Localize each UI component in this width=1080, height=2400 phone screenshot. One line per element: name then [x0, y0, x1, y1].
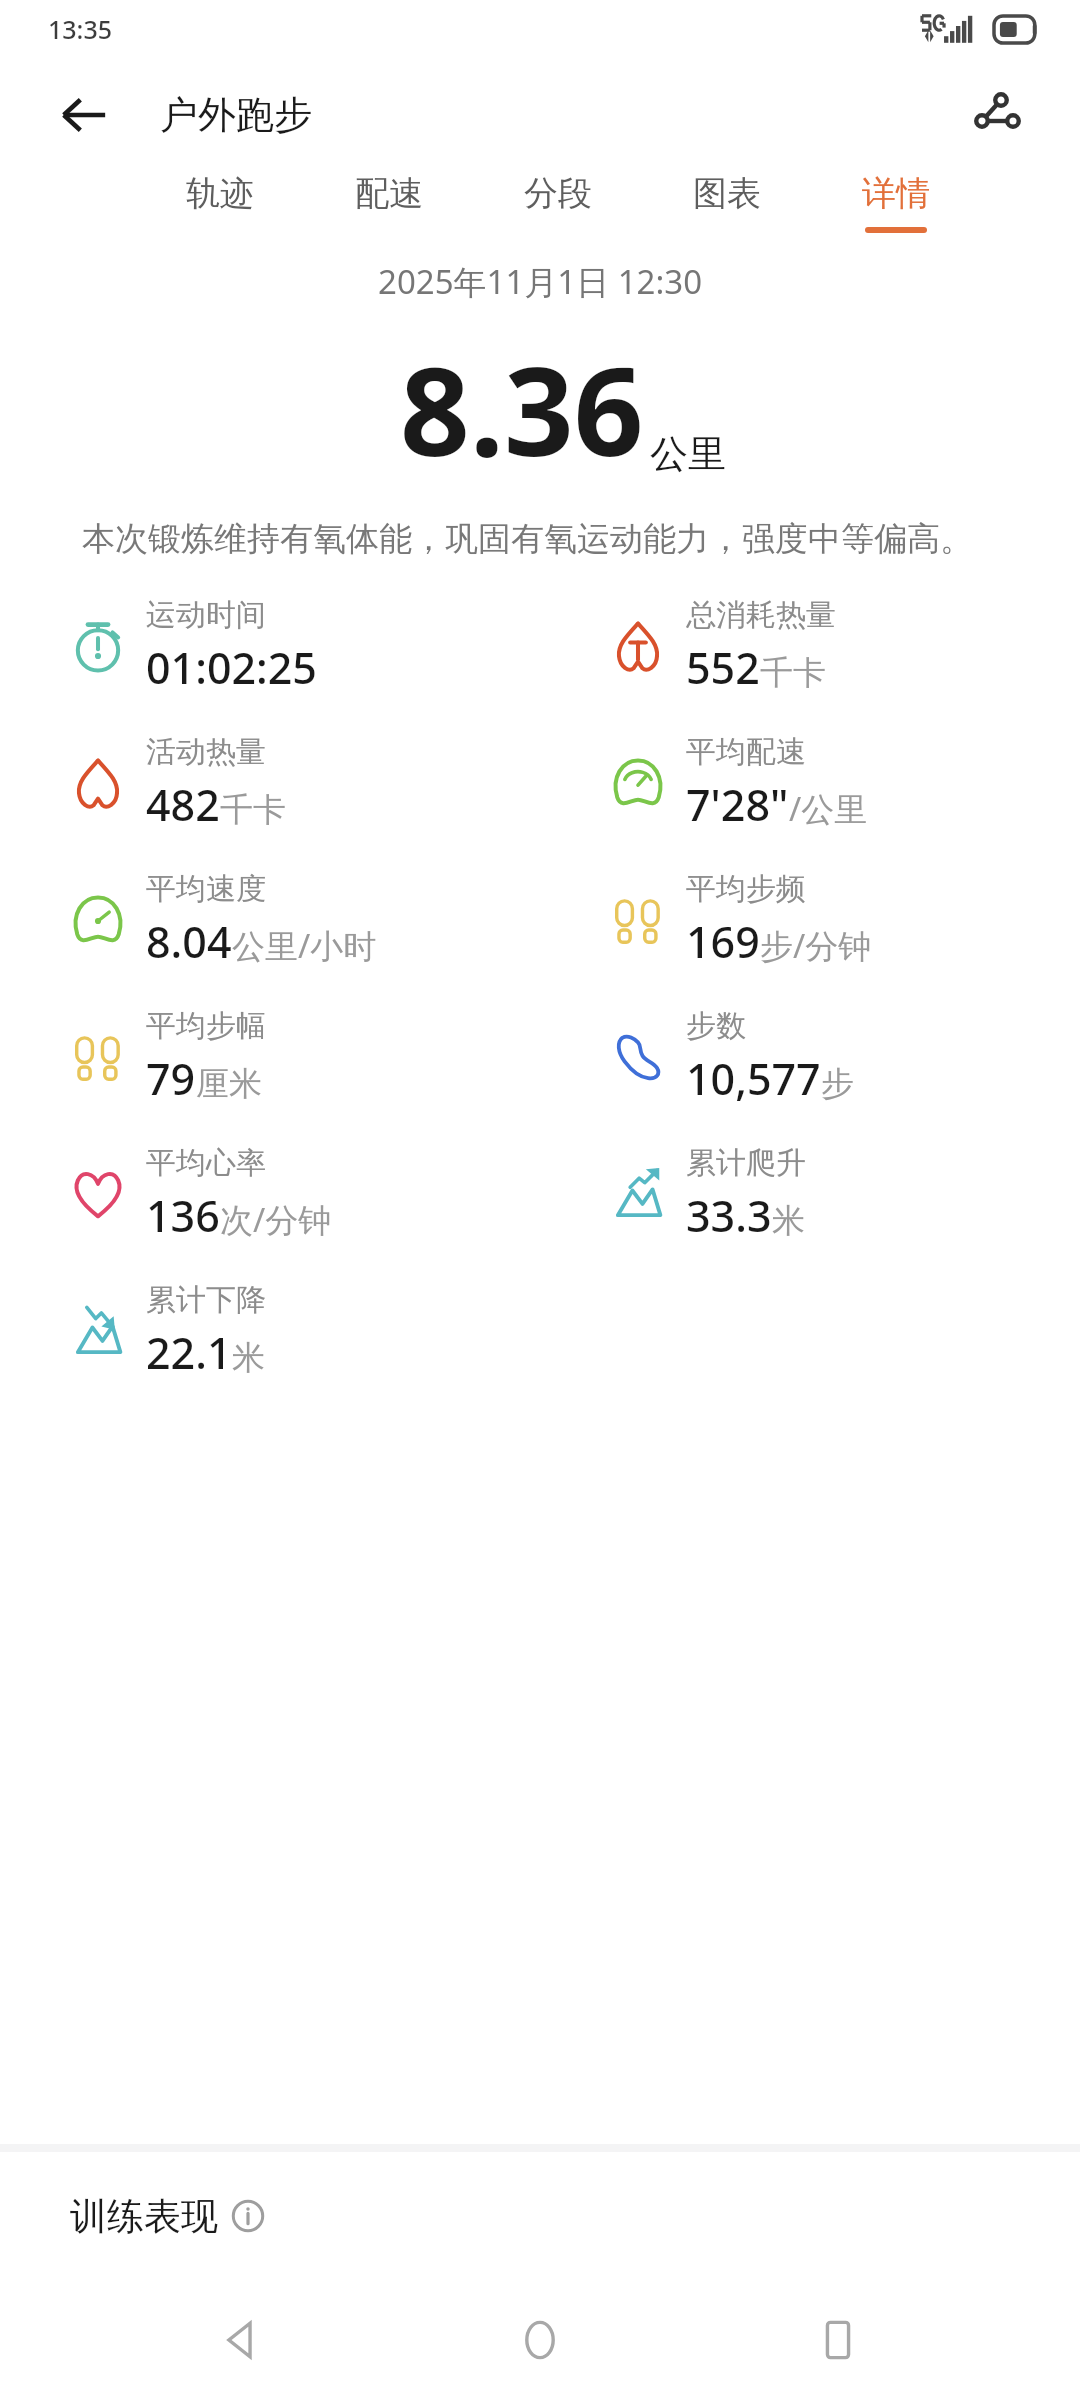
button[interactable]: 平均心率 — [0, 1126, 540, 1263]
staticText: 本次锻炼维持有氧体能，巩固有氧运动能力，强度中等偏高。 — [82, 518, 1022, 560]
staticText: 10,577 — [686, 1049, 821, 1108]
staticText: 平均配速 — [686, 733, 806, 771]
staticText: 图表 — [693, 172, 761, 215]
staticText: 169 — [686, 912, 760, 971]
staticText: 公里/小时 — [232, 923, 377, 968]
button[interactable]: 图表 — [693, 172, 761, 233]
staticText: 13:35 — [48, 12, 113, 46]
button[interactable]: Back — [48, 79, 120, 151]
staticText: 01:02:25 — [146, 638, 317, 697]
staticText: 累计爬升 — [686, 1144, 806, 1182]
staticText: 次/分钟 — [220, 1197, 332, 1242]
button[interactable]: 平均步频 — [540, 852, 1080, 989]
button[interactable]: 平均配速 — [540, 715, 1080, 852]
button[interactable]: 累计下降 — [0, 1263, 540, 1400]
staticText: 33.3 — [686, 1186, 772, 1245]
staticText: 轨迹 — [186, 172, 254, 215]
staticText: 步数 — [686, 1007, 746, 1045]
staticText: 482 — [146, 775, 220, 834]
button[interactable]: 活动热量 — [0, 715, 540, 852]
staticText: 千卡 — [760, 652, 826, 694]
staticText: 厘米 — [196, 1063, 262, 1105]
staticText: 平均速度 — [146, 870, 266, 908]
staticText: 详情 — [862, 172, 930, 215]
button[interactable]: Back — [188, 2285, 298, 2395]
staticText: 552 — [686, 638, 760, 697]
staticText: 分段 — [524, 172, 592, 215]
button[interactable]: Recent apps — [783, 2285, 893, 2395]
staticText: 2025年11月1日 12:30 — [378, 259, 703, 304]
staticText: 8.04 — [146, 912, 232, 971]
button[interactable]: Share — [960, 77, 1036, 153]
staticText: 平均步频 — [686, 870, 806, 908]
staticText: 公里 — [650, 430, 726, 478]
button[interactable]: 运动时间 — [0, 578, 540, 715]
staticText: 平均心率 — [146, 1144, 266, 1182]
staticText: 总消耗热量 — [686, 596, 836, 634]
button[interactable]: 轨迹 — [186, 172, 254, 233]
button[interactable]: 累计爬升 — [540, 1126, 1080, 1263]
staticText: 户外跑步 — [160, 91, 312, 139]
staticText: 累计下降 — [146, 1281, 266, 1319]
staticText: 8.36 — [400, 326, 644, 492]
staticText: 步 — [821, 1063, 854, 1105]
staticText: 79 — [146, 1049, 196, 1108]
staticText: 7'28" — [686, 775, 789, 834]
staticText: 活动热量 — [146, 733, 266, 771]
button[interactable]: 分段 — [524, 172, 592, 233]
button[interactable]: 训练表现 — [0, 2152, 1080, 2280]
staticText: /公里 — [789, 786, 868, 831]
button[interactable]: 配速 — [355, 172, 423, 233]
button[interactable]: 步数 — [540, 989, 1080, 1126]
staticText: 步/分钟 — [760, 923, 872, 968]
button[interactable]: 平均步幅 — [0, 989, 540, 1126]
staticText: 136 — [146, 1186, 220, 1245]
staticText: 米 — [772, 1200, 805, 1242]
staticText: 训练表现 — [70, 2193, 218, 2240]
button[interactable]: Home — [485, 2285, 595, 2395]
staticText: 配速 — [355, 172, 423, 215]
staticText: 运动时间 — [146, 596, 266, 634]
staticText: 千卡 — [220, 789, 286, 831]
staticText: 22.1 — [146, 1323, 232, 1382]
staticText: 平均步幅 — [146, 1007, 266, 1045]
button[interactable]: 总消耗热量 — [540, 578, 1080, 715]
button[interactable]: 详情 — [862, 172, 930, 233]
button[interactable]: 平均速度 — [0, 852, 540, 989]
staticText: 米 — [232, 1337, 265, 1379]
